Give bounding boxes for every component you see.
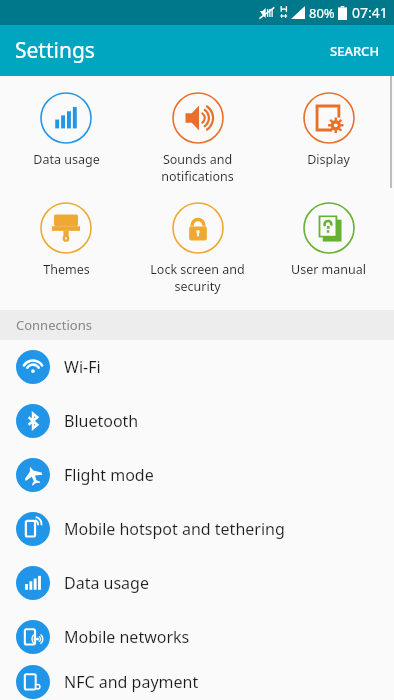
- button[interactable]: Data usage: [0, 556, 394, 610]
- staticText: Sounds and notifications: [161, 151, 234, 184]
- staticText: 07:41: [352, 3, 388, 22]
- staticText: 80%: [309, 4, 335, 22]
- staticText: Wi-Fi: [64, 356, 101, 378]
- staticText: Themes: [43, 261, 90, 278]
- staticText: NFC and payment: [64, 671, 199, 693]
- staticText: Connections: [16, 316, 92, 334]
- staticText: Mobile hotspot and tethering: [64, 518, 285, 540]
- button[interactable]: Wi-Fi: [0, 340, 394, 394]
- button[interactable]: User manual: [263, 200, 394, 280]
- button[interactable]: Sounds and notifications: [132, 90, 263, 186]
- button[interactable]: Display: [263, 90, 394, 170]
- staticText: Lock screen and security: [150, 261, 245, 294]
- button[interactable]: SEARCH: [316, 30, 394, 72]
- staticText: Flight mode: [64, 464, 154, 486]
- staticText: Data usage: [33, 151, 100, 168]
- button[interactable]: Flight mode: [0, 448, 394, 502]
- staticText: Settings: [15, 36, 95, 65]
- staticText: SEARCH: [330, 42, 380, 60]
- staticText: Mobile networks: [64, 626, 190, 648]
- button[interactable]: Data usage: [0, 90, 132, 170]
- button[interactable]: NFC and payment: [0, 664, 394, 700]
- button[interactable]: Themes: [0, 200, 132, 280]
- staticText: Data usage: [64, 572, 149, 594]
- button[interactable]: Lock screen and security: [132, 200, 263, 296]
- button[interactable]: Mobile hotspot and tethering: [0, 502, 394, 556]
- staticText: Bluetooth: [64, 410, 139, 432]
- staticText: User manual: [291, 261, 366, 278]
- button[interactable]: Bluetooth: [0, 394, 394, 448]
- staticText: Display: [307, 151, 350, 168]
- button[interactable]: Mobile networks: [0, 610, 394, 664]
